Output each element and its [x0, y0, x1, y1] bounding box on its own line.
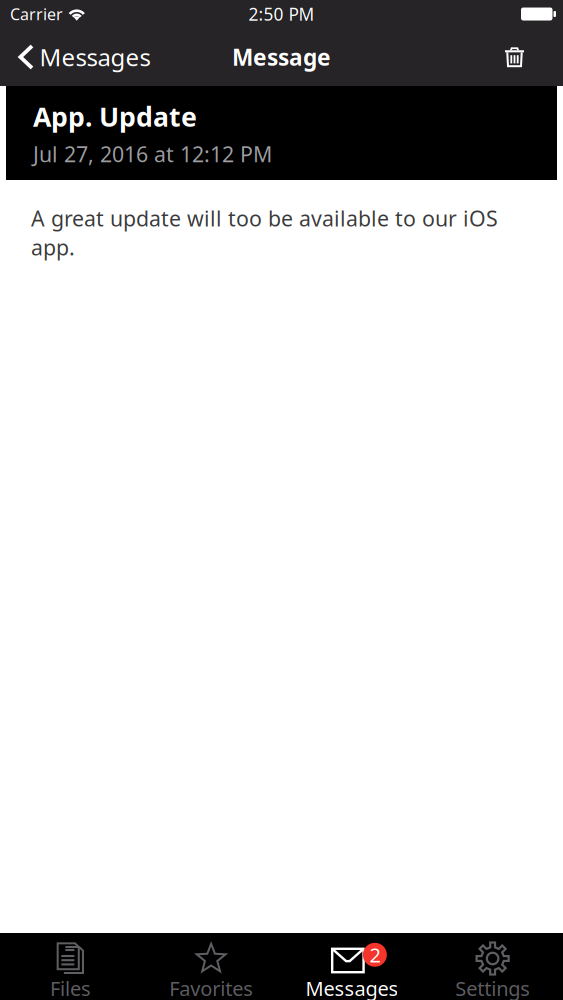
staticText: Favorites: [169, 975, 253, 1000]
staticText: Messages: [39, 41, 150, 73]
staticText: A great update will too be available to …: [31, 204, 498, 232]
button[interactable]: Back to Messages: [0, 28, 162, 86]
staticText: App. Update: [33, 99, 197, 134]
staticText: Messages: [305, 975, 398, 1000]
staticText: Message: [232, 42, 331, 72]
button[interactable]: 2: [281, 933, 422, 1000]
button[interactable]: Files: [0, 933, 141, 1000]
staticText: app.: [31, 233, 75, 261]
staticText: 2:50 PM: [248, 2, 314, 25]
staticText: Carrier: [10, 3, 63, 25]
staticText: 2: [369, 941, 380, 968]
staticText: Jul 27, 2016 at 12:12 PM: [33, 140, 272, 168]
staticText: Files: [50, 975, 91, 1000]
button[interactable]: Favorites: [141, 933, 282, 1000]
button[interactable]: Delete message: [482, 28, 563, 86]
staticText: Settings: [455, 975, 530, 1000]
button[interactable]: Settings: [422, 933, 563, 1000]
